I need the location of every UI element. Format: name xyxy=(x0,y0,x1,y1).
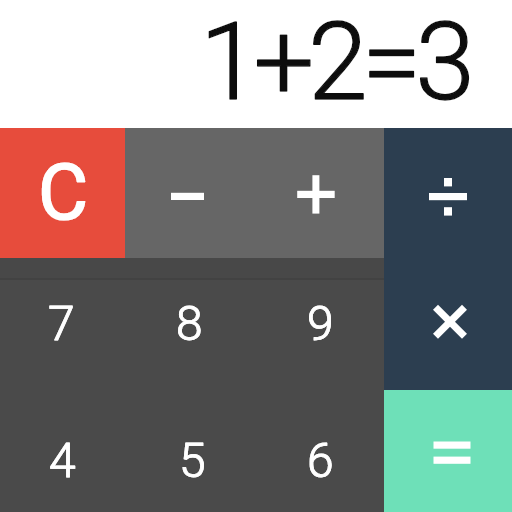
button[interactable] xyxy=(0,390,128,512)
staticText: 6 xyxy=(307,432,334,488)
button[interactable] xyxy=(128,258,256,390)
staticText: 9 xyxy=(307,295,334,351)
staticText: 7 xyxy=(48,295,75,351)
staticText: 9 xyxy=(307,295,334,351)
button[interactable] xyxy=(384,390,512,512)
staticText: 8 xyxy=(176,295,203,351)
staticText: 6 xyxy=(307,432,334,488)
button[interactable] xyxy=(125,128,254,258)
button[interactable] xyxy=(0,128,125,258)
staticText: 1+2=3 xyxy=(200,0,470,125)
button[interactable] xyxy=(384,259,512,390)
staticText: 4 xyxy=(49,432,76,488)
staticText: C xyxy=(38,148,89,238)
staticText: 7 xyxy=(48,295,75,351)
staticText: 5 xyxy=(179,432,206,488)
button[interactable] xyxy=(254,128,384,258)
staticText: 4 xyxy=(49,432,76,488)
staticText: 1+2=3 xyxy=(200,0,470,125)
button[interactable] xyxy=(128,390,256,512)
button[interactable] xyxy=(384,128,512,259)
button[interactable] xyxy=(256,390,384,512)
button[interactable] xyxy=(0,258,128,390)
staticText: 8 xyxy=(176,295,203,351)
button[interactable] xyxy=(256,258,384,390)
staticText: 5 xyxy=(179,432,206,488)
staticText: C xyxy=(38,148,89,238)
